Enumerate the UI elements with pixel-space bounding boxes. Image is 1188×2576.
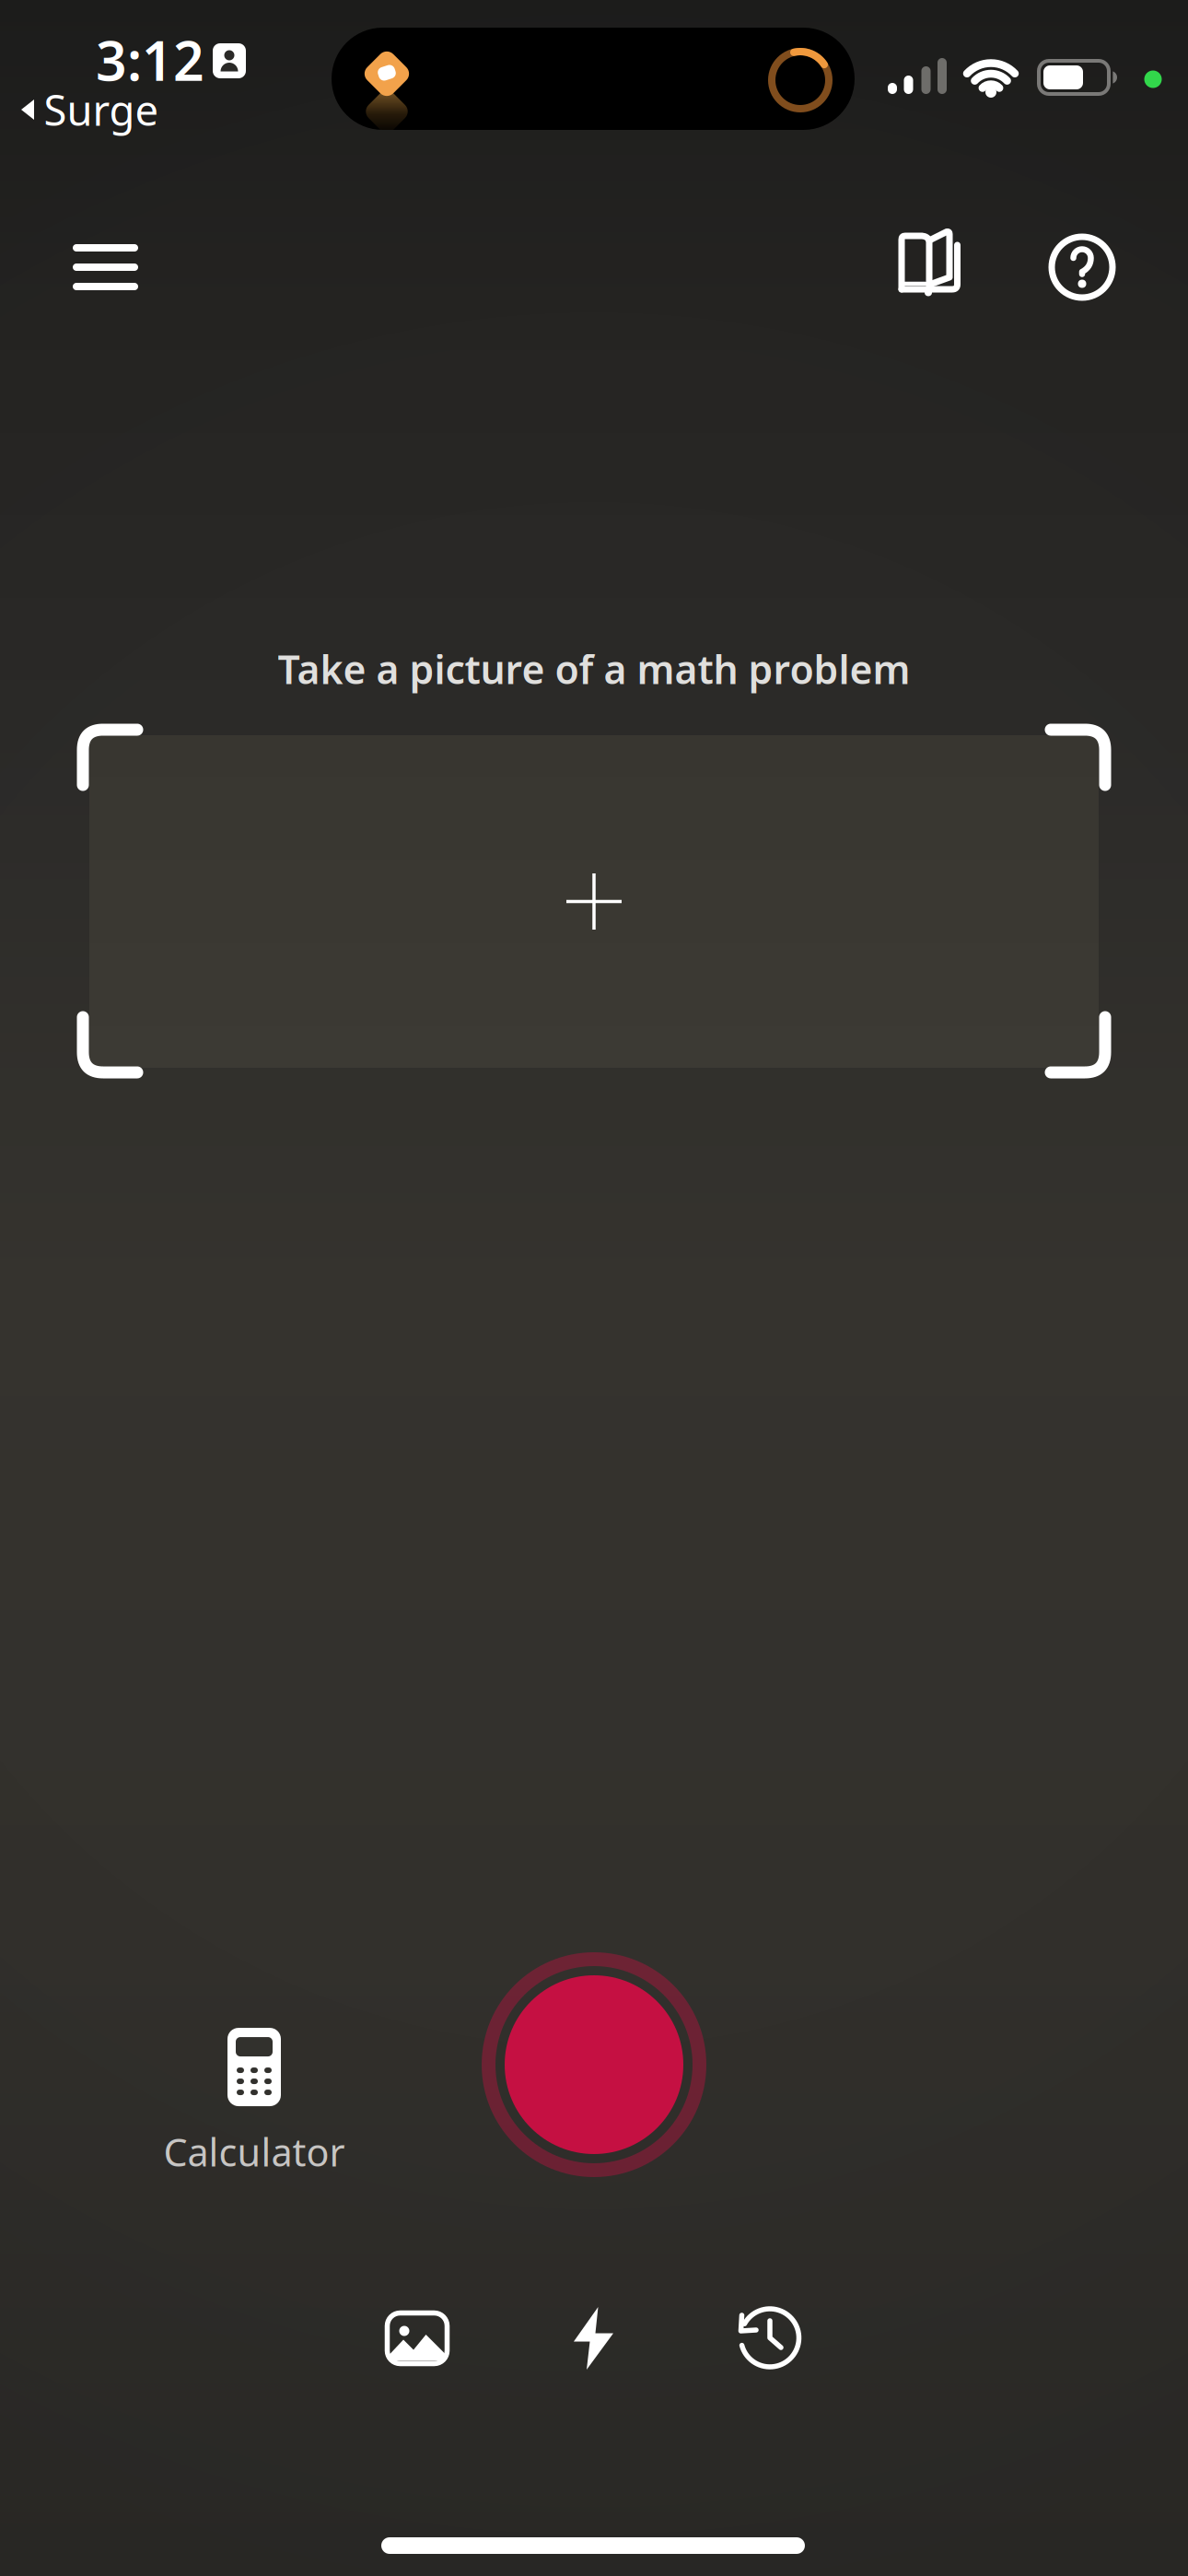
button[interactable]: Back to Surge: [14, 90, 170, 129]
staticText: Take a picture of a math problem: [278, 643, 910, 695]
staticText: Calculator: [163, 2126, 345, 2177]
button[interactable]: Flash: [543, 2288, 645, 2389]
button[interactable]: Menu: [53, 217, 155, 318]
button[interactable]: Help: [1031, 217, 1133, 318]
button[interactable]: Photo library: [367, 2288, 468, 2389]
button[interactable]: Bookpoint: [883, 217, 984, 318]
staticText: 3:12: [96, 24, 204, 96]
button[interactable]: Calculator: [134, 2020, 374, 2185]
button[interactable]: History: [719, 2288, 821, 2389]
button[interactable]: Take picture: [479, 1950, 709, 2180]
staticText: Surge: [44, 82, 159, 137]
